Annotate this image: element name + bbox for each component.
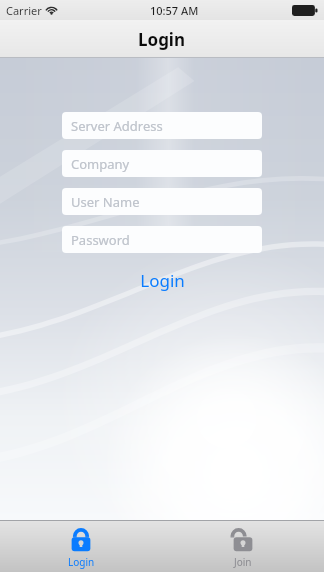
button[interactable]: Company [62,150,262,177]
button[interactable]: Login [117,267,207,293]
staticText: Password [71,231,130,249]
staticText: Login [140,269,185,292]
staticText: Server Address [71,117,163,135]
staticText: Carrier [6,3,42,18]
button[interactable]: Join [162,521,324,572]
button[interactable]: Login [0,521,162,572]
button[interactable]: Password [62,226,262,253]
staticText: Company [71,155,130,173]
button[interactable]: User Name [62,188,262,215]
staticText: Join [234,555,252,569]
staticText: 10:57 AM [150,3,199,18]
button[interactable]: Server Address [62,112,262,139]
staticText: Login [68,555,95,569]
staticText: User Name [71,193,140,211]
staticText: Login [138,28,186,51]
